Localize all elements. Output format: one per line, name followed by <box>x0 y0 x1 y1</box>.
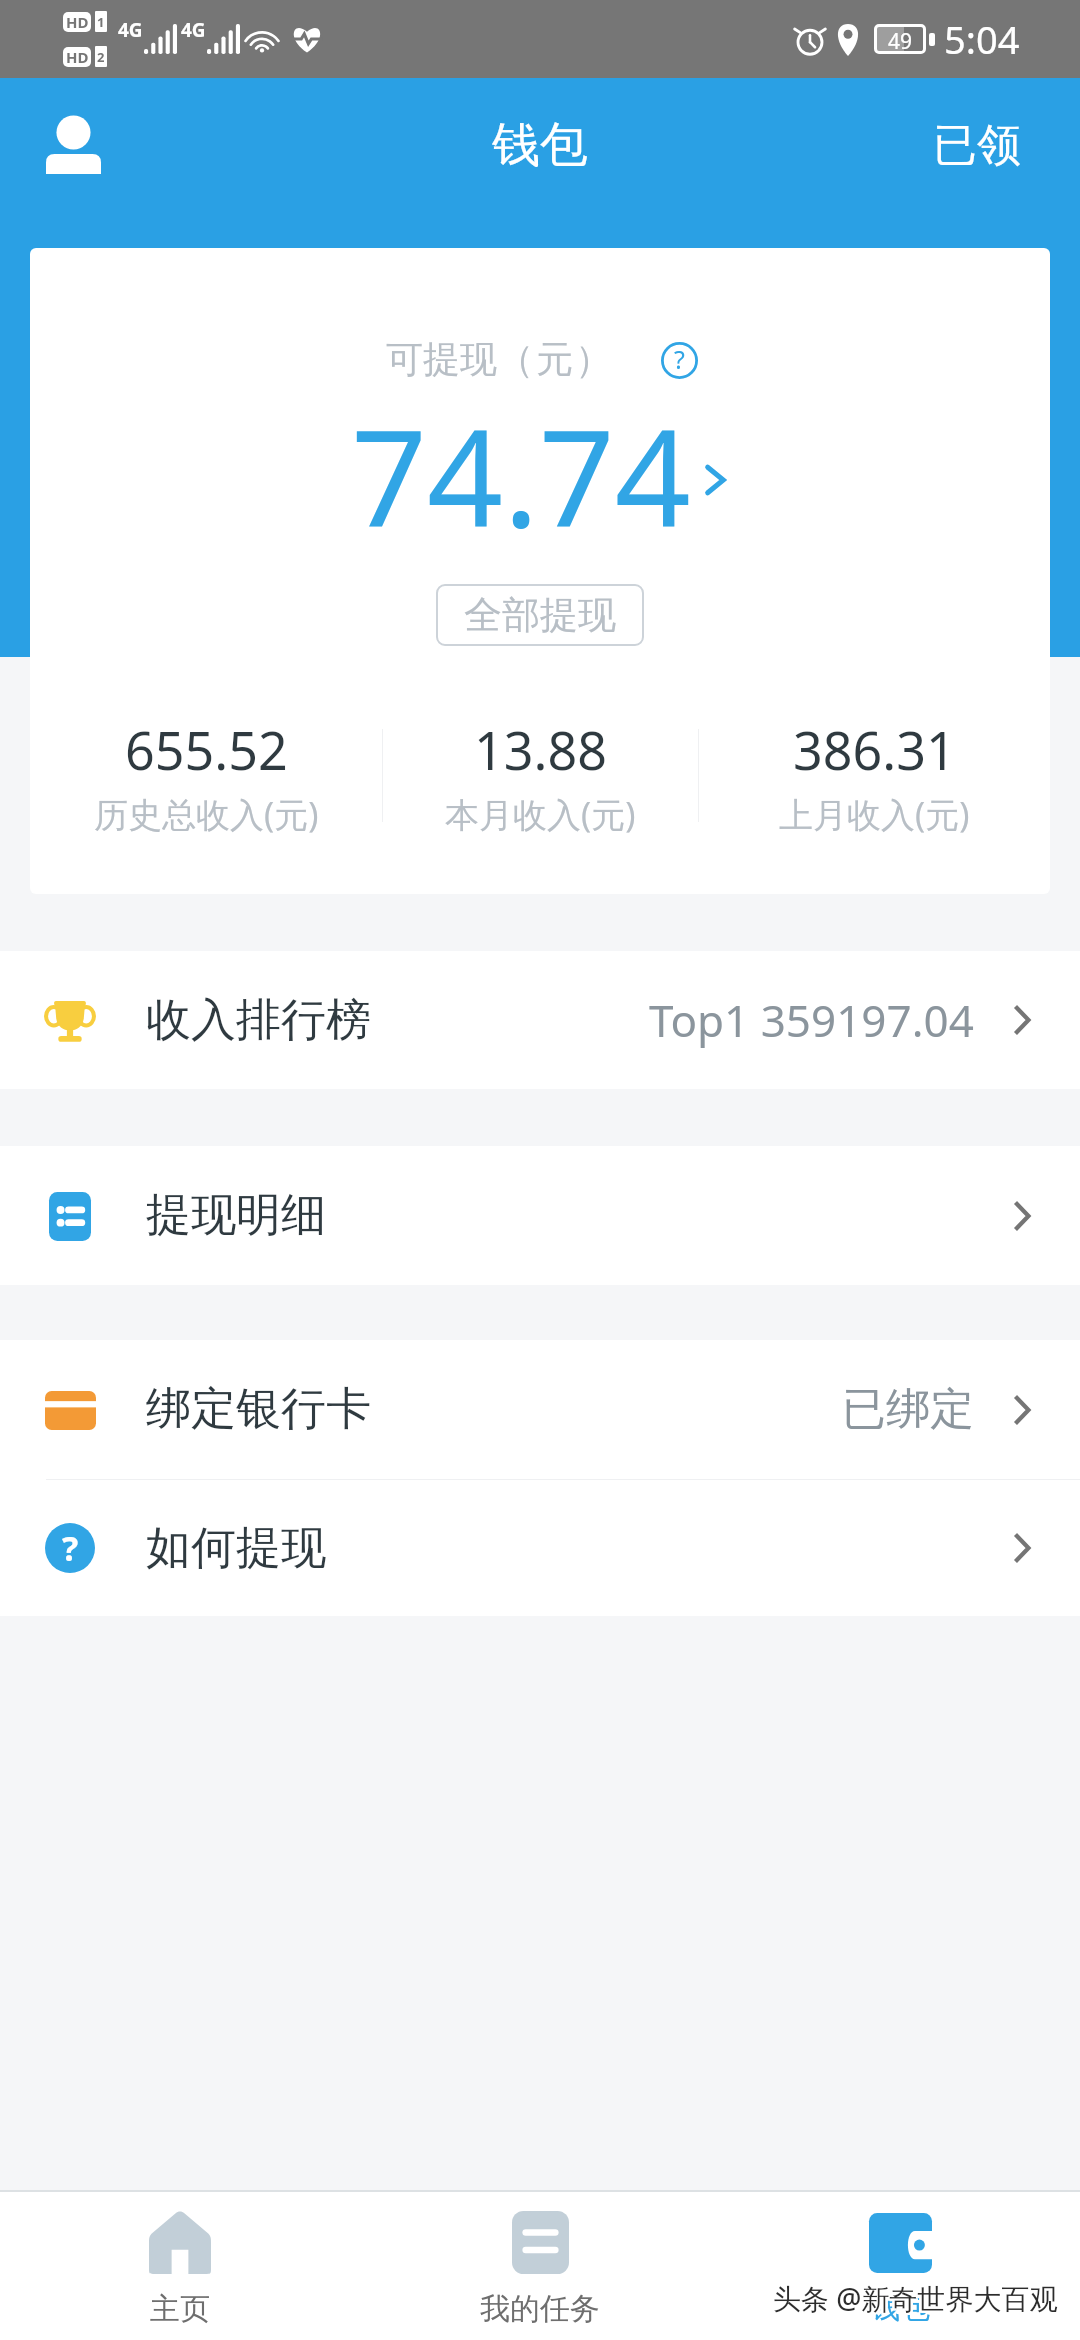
button[interactable]: 提现明细 <box>0 1146 1080 1285</box>
staticText: 4G <box>181 17 206 43</box>
button[interactable]: 收入排行榜 <box>0 951 1080 1089</box>
staticText: 头条 @新奇世界大百观 <box>775 2277 1060 2315</box>
staticText: 钱包 <box>870 2289 930 2327</box>
button[interactable]: Profile <box>33 105 113 185</box>
staticText: Top1 359197.04 <box>649 990 974 1050</box>
button[interactable]: 已领 <box>921 108 1033 183</box>
staticText: 头条 @新奇世界大百观 <box>771 2279 1056 2317</box>
staticText: ? <box>674 342 685 376</box>
staticText: 头条 @新奇世界大百观 <box>773 2277 1058 2315</box>
staticText: 上月收入(元) <box>779 791 970 837</box>
staticText: 绑定银行卡 <box>146 1381 371 1438</box>
staticText: 13.88 <box>474 714 607 785</box>
button[interactable]: 主页 <box>0 2192 360 2340</box>
staticText: 386.31 <box>793 714 956 785</box>
staticText: 如何提现 <box>146 1520 326 1577</box>
staticText: 全部提现 <box>464 591 616 639</box>
staticText: HD <box>66 47 89 67</box>
staticText: 可提现 <box>386 336 497 383</box>
staticText: 2 <box>97 48 105 66</box>
staticText: 头条 @新奇世界大百观 <box>775 2279 1060 2317</box>
button[interactable]: 我的任务 <box>360 2192 720 2340</box>
staticText: 头条 @新奇世界大百观 <box>775 2281 1060 2319</box>
staticText: 主页 <box>150 2290 210 2328</box>
staticText: 49 <box>888 27 913 51</box>
staticText: 5:04 <box>944 13 1020 65</box>
button[interactable]: 全部提现 <box>436 584 644 646</box>
staticText: 头条 @新奇世界大百观 <box>771 2281 1056 2319</box>
button[interactable]: 绑定银行卡 <box>0 1340 1080 1479</box>
button[interactable]: Help <box>659 340 699 380</box>
staticText: 头条 @新奇世界大百观 <box>773 2281 1058 2319</box>
staticText: 本月收入(元) <box>445 791 636 837</box>
button[interactable]: 钱包 <box>720 2192 1080 2340</box>
staticText: 收入排行榜 <box>146 992 371 1049</box>
staticText: 已领 <box>933 118 1021 173</box>
staticText: 历史总收入(元) <box>94 791 319 837</box>
staticText: ? <box>62 1525 79 1571</box>
staticText: 提现明细 <box>146 1187 326 1244</box>
staticText: ） <box>575 336 612 383</box>
staticText: 头条 @新奇世界大百观 <box>773 2279 1058 2317</box>
staticText: 头条 @新奇世界大百观 <box>771 2277 1056 2315</box>
staticText: 我的任务 <box>480 2290 600 2328</box>
staticText: 元 <box>536 336 573 383</box>
staticText: 1 <box>97 13 105 31</box>
staticText: 4G <box>118 17 143 43</box>
staticText: HD <box>66 12 89 32</box>
staticText: 74.74 <box>351 385 691 566</box>
staticText: （ <box>497 336 534 383</box>
staticText: 已绑定 <box>842 1382 974 1437</box>
staticText: 655.52 <box>125 714 288 785</box>
button[interactable]: ? <box>0 1480 1080 1616</box>
staticText: 钱包 <box>492 115 588 175</box>
